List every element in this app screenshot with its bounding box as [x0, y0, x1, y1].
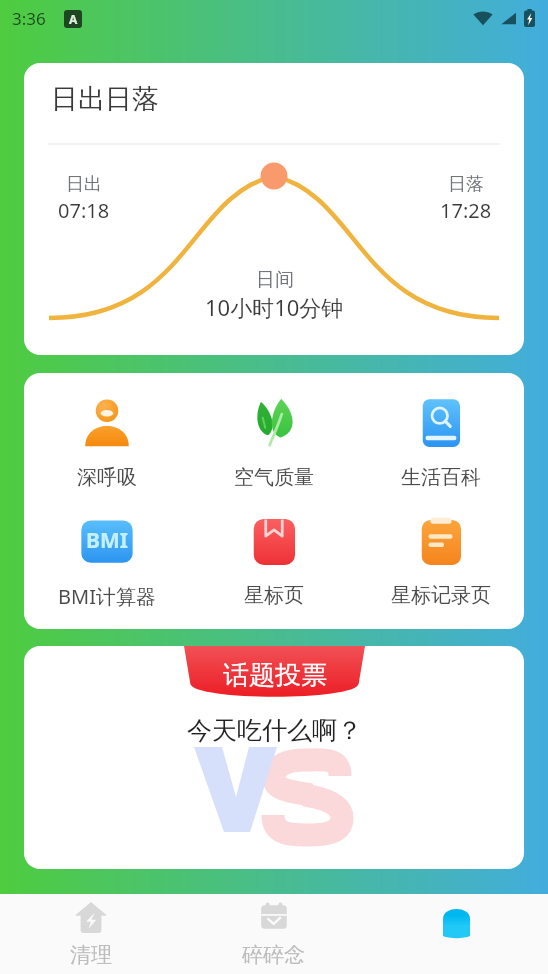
staticText: 日间 [256, 268, 294, 292]
staticText: 清理 [70, 942, 112, 968]
button[interactable]: 星标记录页 [357, 515, 524, 608]
button[interactable]: BMI [24, 515, 190, 610]
staticText: 日出 [66, 173, 102, 196]
button[interactable]: 碎碎念 [182, 894, 365, 974]
staticText: 日落 [448, 173, 484, 196]
staticText: 碎碎念 [242, 942, 305, 968]
button[interactable]: 清理 [0, 894, 182, 974]
staticText: A [69, 11, 78, 27]
staticText: 07:18 [58, 197, 110, 224]
staticText: 星标记录页 [391, 583, 491, 608]
button[interactable]: 生活百科 [357, 397, 524, 490]
staticText: 10小时10分钟 [205, 292, 344, 322]
staticText: 话题投票 [223, 659, 327, 692]
button[interactable]: 我的 [365, 894, 548, 974]
button[interactable]: 空气质量 [190, 397, 357, 490]
staticText: 3:36 [12, 7, 46, 30]
button[interactable]: 深呼吸 [24, 397, 190, 490]
button[interactable]: 话题投票 [184, 646, 365, 700]
staticText: 生活百科 [401, 465, 481, 490]
button[interactable]: 话题投票 [24, 646, 524, 869]
staticText: 空气质量 [234, 465, 314, 490]
button[interactable]: 日出日落 [24, 63, 524, 355]
staticText: 17:28 [440, 197, 492, 224]
staticText: 日出日落 [51, 82, 159, 116]
staticText: BMI [86, 526, 128, 555]
button[interactable]: 星标页 [190, 515, 357, 608]
staticText: BMI计算器 [58, 583, 156, 610]
staticText: 今天吃什么啊？ [187, 715, 362, 746]
staticText: 深呼吸 [77, 465, 137, 490]
staticText: 星标页 [244, 583, 304, 608]
